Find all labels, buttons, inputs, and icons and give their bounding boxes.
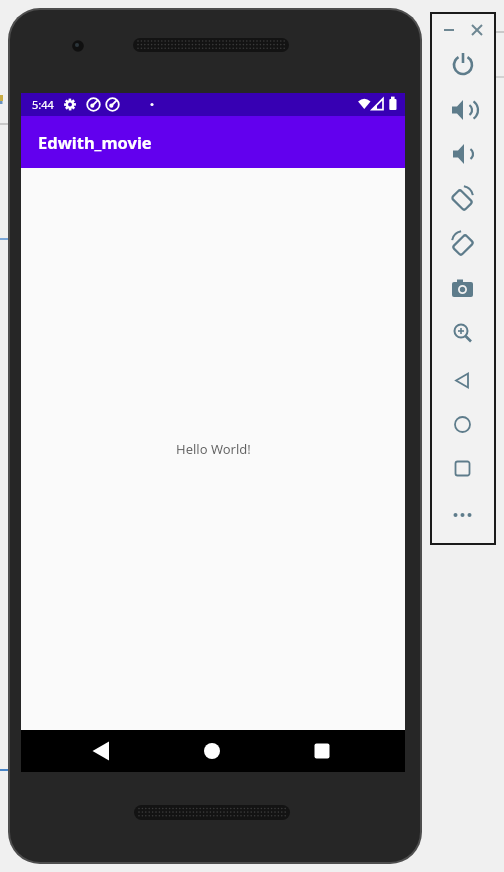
staticText: Edwith_movie (38, 131, 152, 153)
button[interactable] (446, 93, 480, 127)
button[interactable] (446, 272, 480, 306)
button[interactable] (305, 734, 339, 768)
button[interactable] (446, 47, 480, 81)
button[interactable] (446, 137, 480, 171)
button[interactable] (439, 20, 459, 40)
button[interactable] (446, 227, 480, 261)
staticText: Hello World! (176, 440, 251, 458)
button[interactable] (195, 734, 229, 768)
button[interactable] (446, 182, 480, 216)
button[interactable] (446, 364, 480, 398)
staticText: 5:44 (32, 97, 54, 112)
button[interactable] (446, 498, 480, 532)
button[interactable] (467, 20, 487, 40)
button[interactable] (446, 452, 480, 486)
button[interactable] (446, 317, 480, 351)
button[interactable] (84, 734, 118, 768)
button[interactable] (446, 408, 480, 442)
